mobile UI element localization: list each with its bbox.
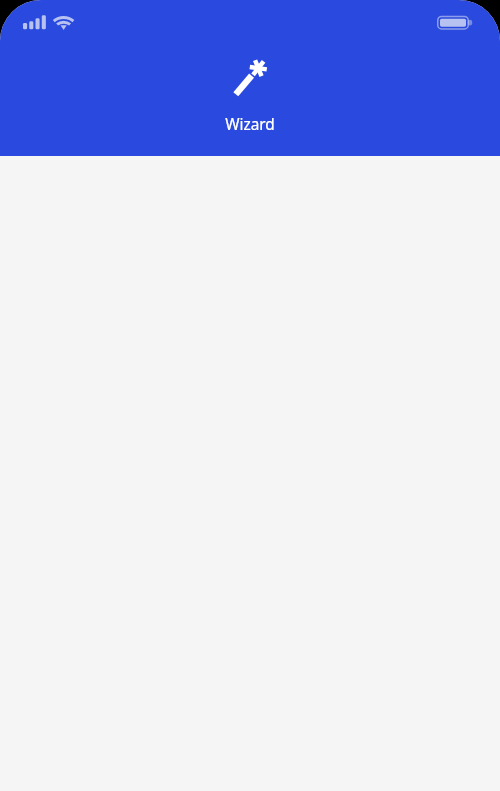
- staticText: Wizard: [225, 114, 275, 135]
- button[interactable]: Wizard: [230, 58, 270, 98]
